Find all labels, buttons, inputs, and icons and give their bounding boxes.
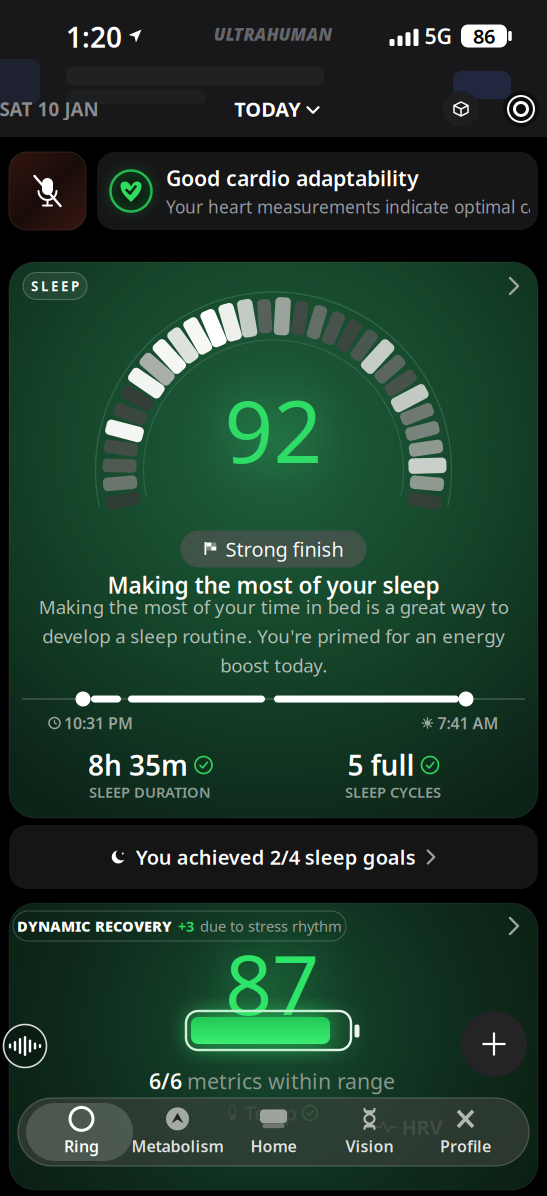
staticText: 6/6 bbox=[149, 1067, 182, 1095]
button[interactable]: Profile bbox=[417, 1103, 513, 1161]
staticText: Ring bbox=[64, 1135, 99, 1157]
button[interactable]: Good cardio adaptability bbox=[97, 152, 538, 230]
button[interactable]: Home bbox=[225, 1103, 321, 1161]
button[interactable]: S L E E P bbox=[9, 262, 538, 818]
button[interactable]: You achieved 2/4 sleep goals bbox=[9, 825, 538, 889]
staticText: Good cardio adaptability bbox=[166, 164, 419, 192]
button[interactable]: Microphone muted bbox=[9, 152, 86, 230]
staticText: SAT 10 JAN bbox=[0, 97, 98, 121]
staticText: Your heart measurements indicate optimal… bbox=[166, 195, 547, 218]
staticText: 92 bbox=[224, 373, 322, 487]
staticText: DYNAMIC RECOVERY bbox=[17, 916, 172, 936]
staticText: Vision bbox=[345, 1135, 393, 1157]
staticText: Making the most of your sleep bbox=[107, 570, 439, 600]
staticText: Profile bbox=[440, 1135, 491, 1157]
staticText: SLEEP CYCLES bbox=[345, 782, 441, 802]
staticText: metrics within range bbox=[187, 1067, 395, 1095]
staticText: ULTRAHUMAN bbox=[213, 22, 332, 45]
staticText: 5G bbox=[424, 22, 451, 50]
button[interactable]: DYNAMIC RECOVERY bbox=[9, 903, 538, 1190]
button[interactable]: TODAY bbox=[234, 96, 318, 122]
button[interactable]: Add bbox=[461, 1011, 527, 1077]
staticText: 87 bbox=[225, 928, 319, 1038]
button[interactable]: 3D view bbox=[443, 91, 479, 127]
staticText: 8h 35m bbox=[88, 746, 188, 784]
button[interactable]: Metabolism bbox=[129, 1103, 225, 1161]
button[interactable]: Ring status bbox=[503, 91, 539, 127]
staticText: S L E E P bbox=[31, 277, 79, 295]
staticText: Metabolism bbox=[131, 1135, 223, 1157]
staticText: due to stress rhythm bbox=[200, 916, 342, 936]
staticText: Making the most of your time in bed is a… bbox=[38, 594, 508, 678]
button[interactable]: Ring bbox=[33, 1103, 129, 1161]
staticText: Temp bbox=[244, 1100, 296, 1126]
staticText: 86 bbox=[473, 23, 495, 49]
staticText: 1:20 bbox=[66, 18, 122, 56]
staticText: TODAY bbox=[234, 96, 301, 122]
staticText: HRV bbox=[401, 1114, 442, 1140]
staticText: +3 bbox=[178, 916, 194, 936]
button[interactable]: Vision bbox=[321, 1103, 417, 1161]
staticText: 10:31 PM bbox=[64, 712, 133, 734]
staticText: SLEEP DURATION bbox=[89, 782, 211, 802]
button[interactable]: Voice notes bbox=[3, 1024, 46, 1067]
staticText: 7:41 AM bbox=[437, 712, 498, 734]
staticText: Home bbox=[250, 1135, 296, 1157]
staticText: Strong finish bbox=[225, 536, 343, 562]
staticText: 5 full bbox=[347, 746, 414, 784]
staticText: You achieved 2/4 sleep goals bbox=[136, 844, 416, 870]
